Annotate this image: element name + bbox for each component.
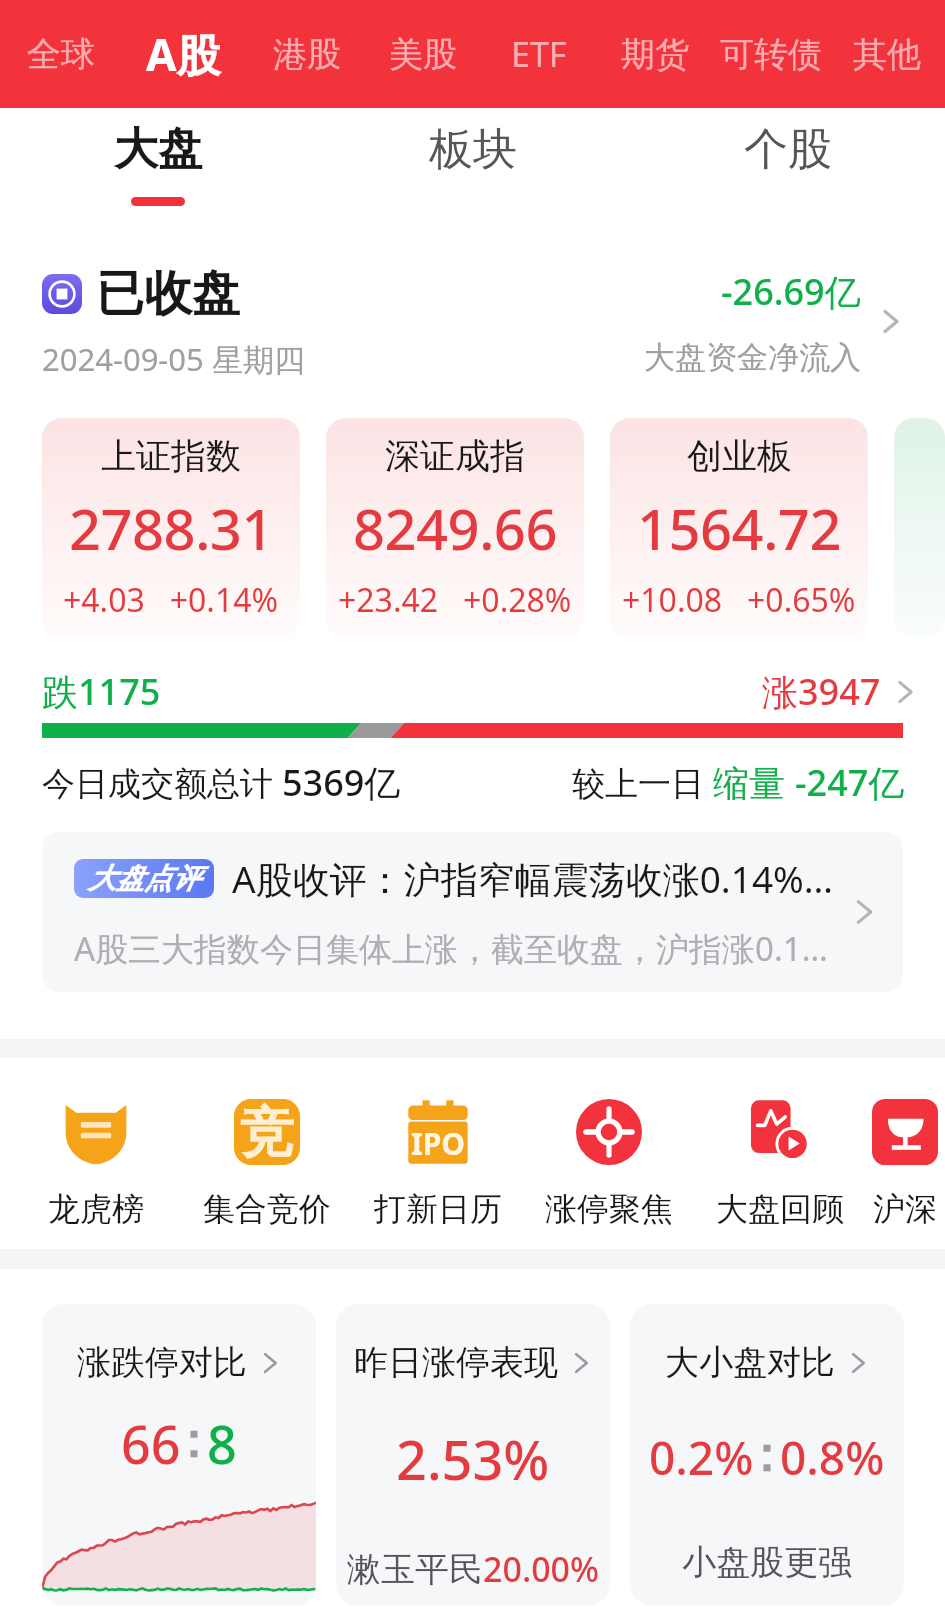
staticText: 今日成交额总计	[42, 760, 282, 805]
staticText: 大盘	[114, 122, 202, 177]
staticText: 涨跌停对比	[77, 1341, 247, 1384]
staticText: 8249.66	[353, 490, 557, 566]
staticText: 集合竞价	[203, 1189, 331, 1229]
button[interactable]: 深证成指	[326, 418, 584, 638]
staticText: 深证成指	[385, 434, 525, 478]
staticText: 1564.72	[637, 490, 841, 566]
staticText: -247亿	[795, 758, 905, 807]
staticText: IPO	[411, 1123, 466, 1164]
staticText: 66	[121, 1408, 181, 1479]
staticText: 大盘点评	[88, 861, 200, 896]
staticText: 个股	[744, 122, 832, 177]
staticText: +10.08 +0.65%	[622, 578, 856, 622]
staticText: -26.69亿	[721, 267, 861, 316]
staticText: 板块	[429, 122, 517, 177]
staticText: 0.8%	[780, 1426, 885, 1489]
staticText: 跌1175	[42, 667, 161, 716]
staticText: 缩量	[713, 758, 795, 807]
button[interactable]: 港股	[248, 0, 365, 108]
button[interactable]: 涨停聚焦	[523, 1099, 694, 1229]
button[interactable]: 美股	[365, 0, 481, 108]
button[interactable]: 大盘	[0, 108, 315, 225]
staticText: 小盘股更强	[682, 1541, 852, 1584]
staticText: 昨日涨停表现	[354, 1341, 558, 1384]
button[interactable]: 板块	[315, 108, 630, 225]
button[interactable]: IPO	[352, 1099, 523, 1229]
button[interactable]: 跌1175	[0, 667, 945, 716]
staticText: 期货	[621, 33, 689, 76]
staticText: 其他	[853, 33, 921, 76]
staticText: +4.03 +0.14%	[63, 578, 279, 622]
staticText: 8	[207, 1408, 237, 1479]
button[interactable]: 涨跌停对比	[42, 1304, 316, 1606]
staticText: 2.53%	[396, 1422, 550, 1496]
staticText: 大盘资金净流入	[644, 338, 861, 377]
staticText: 全球	[27, 33, 95, 76]
button[interactable]: 可转债	[713, 0, 829, 108]
staticText: A股	[146, 24, 221, 84]
other: 资金流入详情	[878, 309, 903, 334]
staticText: 上证指数	[101, 434, 241, 478]
staticText: 竞	[240, 1099, 294, 1165]
staticText: 港股	[273, 33, 341, 76]
staticText: 涨停聚焦	[545, 1189, 673, 1229]
staticText: 打新日历	[374, 1189, 502, 1229]
staticText: 2788.31	[69, 490, 273, 566]
staticText: 较上一日	[572, 760, 713, 805]
button[interactable]: 大盘点评	[42, 832, 903, 992]
staticText: A股三大指数今日集体上涨，截至收盘，沪指涨0.1…	[74, 926, 828, 971]
button[interactable]: 龙虎榜	[10, 1099, 181, 1229]
staticText: 沪深	[873, 1189, 937, 1229]
staticText: 0.2%	[649, 1426, 754, 1489]
staticText: 创业板	[687, 434, 792, 478]
staticText: 2024-09-05 星期四	[42, 338, 305, 380]
staticText: 5369亿	[282, 758, 401, 807]
staticText: 20.00%	[483, 1546, 600, 1592]
button[interactable]: 大盘回顾	[694, 1099, 865, 1229]
button[interactable]: 昨日涨停表现	[336, 1304, 610, 1606]
button[interactable]: ETF	[481, 0, 597, 108]
staticText: 漱玉平民	[347, 1548, 483, 1591]
staticText: 已收盘	[96, 264, 240, 324]
button[interactable]: 期货	[597, 0, 713, 108]
button[interactable]: A股	[119, 0, 248, 108]
button[interactable]: 个股	[630, 108, 945, 225]
staticText: 涨3947	[762, 667, 881, 716]
button[interactable]: 大小盘对比	[630, 1304, 904, 1606]
staticText: +23.42 +0.28%	[338, 578, 572, 622]
staticText: 美股	[389, 33, 457, 76]
button[interactable]: 其他	[829, 0, 945, 108]
button[interactable]: 沪深	[865, 1099, 945, 1229]
button[interactable]: 创业板	[610, 418, 868, 638]
button[interactable]: 全球	[2, 0, 119, 108]
staticText: 大盘回顾	[716, 1189, 844, 1229]
staticText: 大小盘对比	[665, 1341, 835, 1384]
staticText: 龙虎榜	[48, 1189, 144, 1229]
staticText: ETF	[511, 31, 567, 77]
staticText: 可转债	[720, 33, 822, 76]
staticText: A股收评：沪指窄幅震荡收涨0.14%…	[232, 853, 834, 904]
button[interactable]: 上证指数	[42, 418, 300, 638]
button[interactable]: 竞	[181, 1099, 352, 1229]
